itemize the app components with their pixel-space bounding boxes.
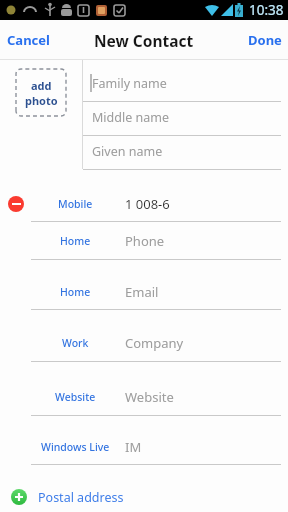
- staticText: Family name: [92, 75, 167, 92]
- staticText: 1 008-6: [125, 195, 170, 213]
- staticText: Email: [125, 283, 159, 301]
- staticText: add: [31, 78, 52, 93]
- button[interactable]: Home: [31, 223, 281, 259]
- staticText: 10:38: [249, 1, 284, 19]
- button[interactable]: Middle name: [83, 101, 281, 135]
- button[interactable]: Windows Live: [31, 429, 281, 464]
- button[interactable]: Website: [31, 379, 281, 415]
- button[interactable]: Family name: [83, 67, 281, 101]
- staticText: Home: [60, 234, 91, 248]
- staticText: Mobile: [58, 197, 93, 211]
- staticText: photo: [25, 93, 58, 108]
- button[interactable]: Postal address: [8, 482, 278, 512]
- staticText: Website: [55, 390, 96, 404]
- staticText: Home: [60, 285, 91, 299]
- staticText: Work: [62, 336, 89, 350]
- staticText: Given name: [92, 143, 163, 160]
- staticText: Windows Live: [41, 440, 110, 454]
- staticText: New Contact: [94, 30, 194, 51]
- button[interactable]: Given name: [83, 135, 281, 169]
- staticText: Postal address: [38, 489, 124, 506]
- button[interactable]: add: [16, 69, 66, 116]
- staticText: IM: [125, 438, 142, 456]
- button[interactable]: Work: [31, 325, 281, 361]
- staticText: Company: [125, 334, 184, 352]
- staticText: Cancel: [7, 31, 50, 49]
- staticText: Website: [125, 388, 174, 406]
- button[interactable]: Home: [31, 274, 281, 309]
- button[interactable]: Done: [242, 20, 288, 60]
- staticText: Phone: [125, 232, 165, 250]
- button[interactable]: Mobile: [31, 186, 281, 221]
- button[interactable]: Cancel: [0, 20, 57, 60]
- staticText: Done: [248, 31, 282, 49]
- staticText: Middle name: [92, 109, 169, 126]
- button[interactable]: [8, 196, 24, 212]
